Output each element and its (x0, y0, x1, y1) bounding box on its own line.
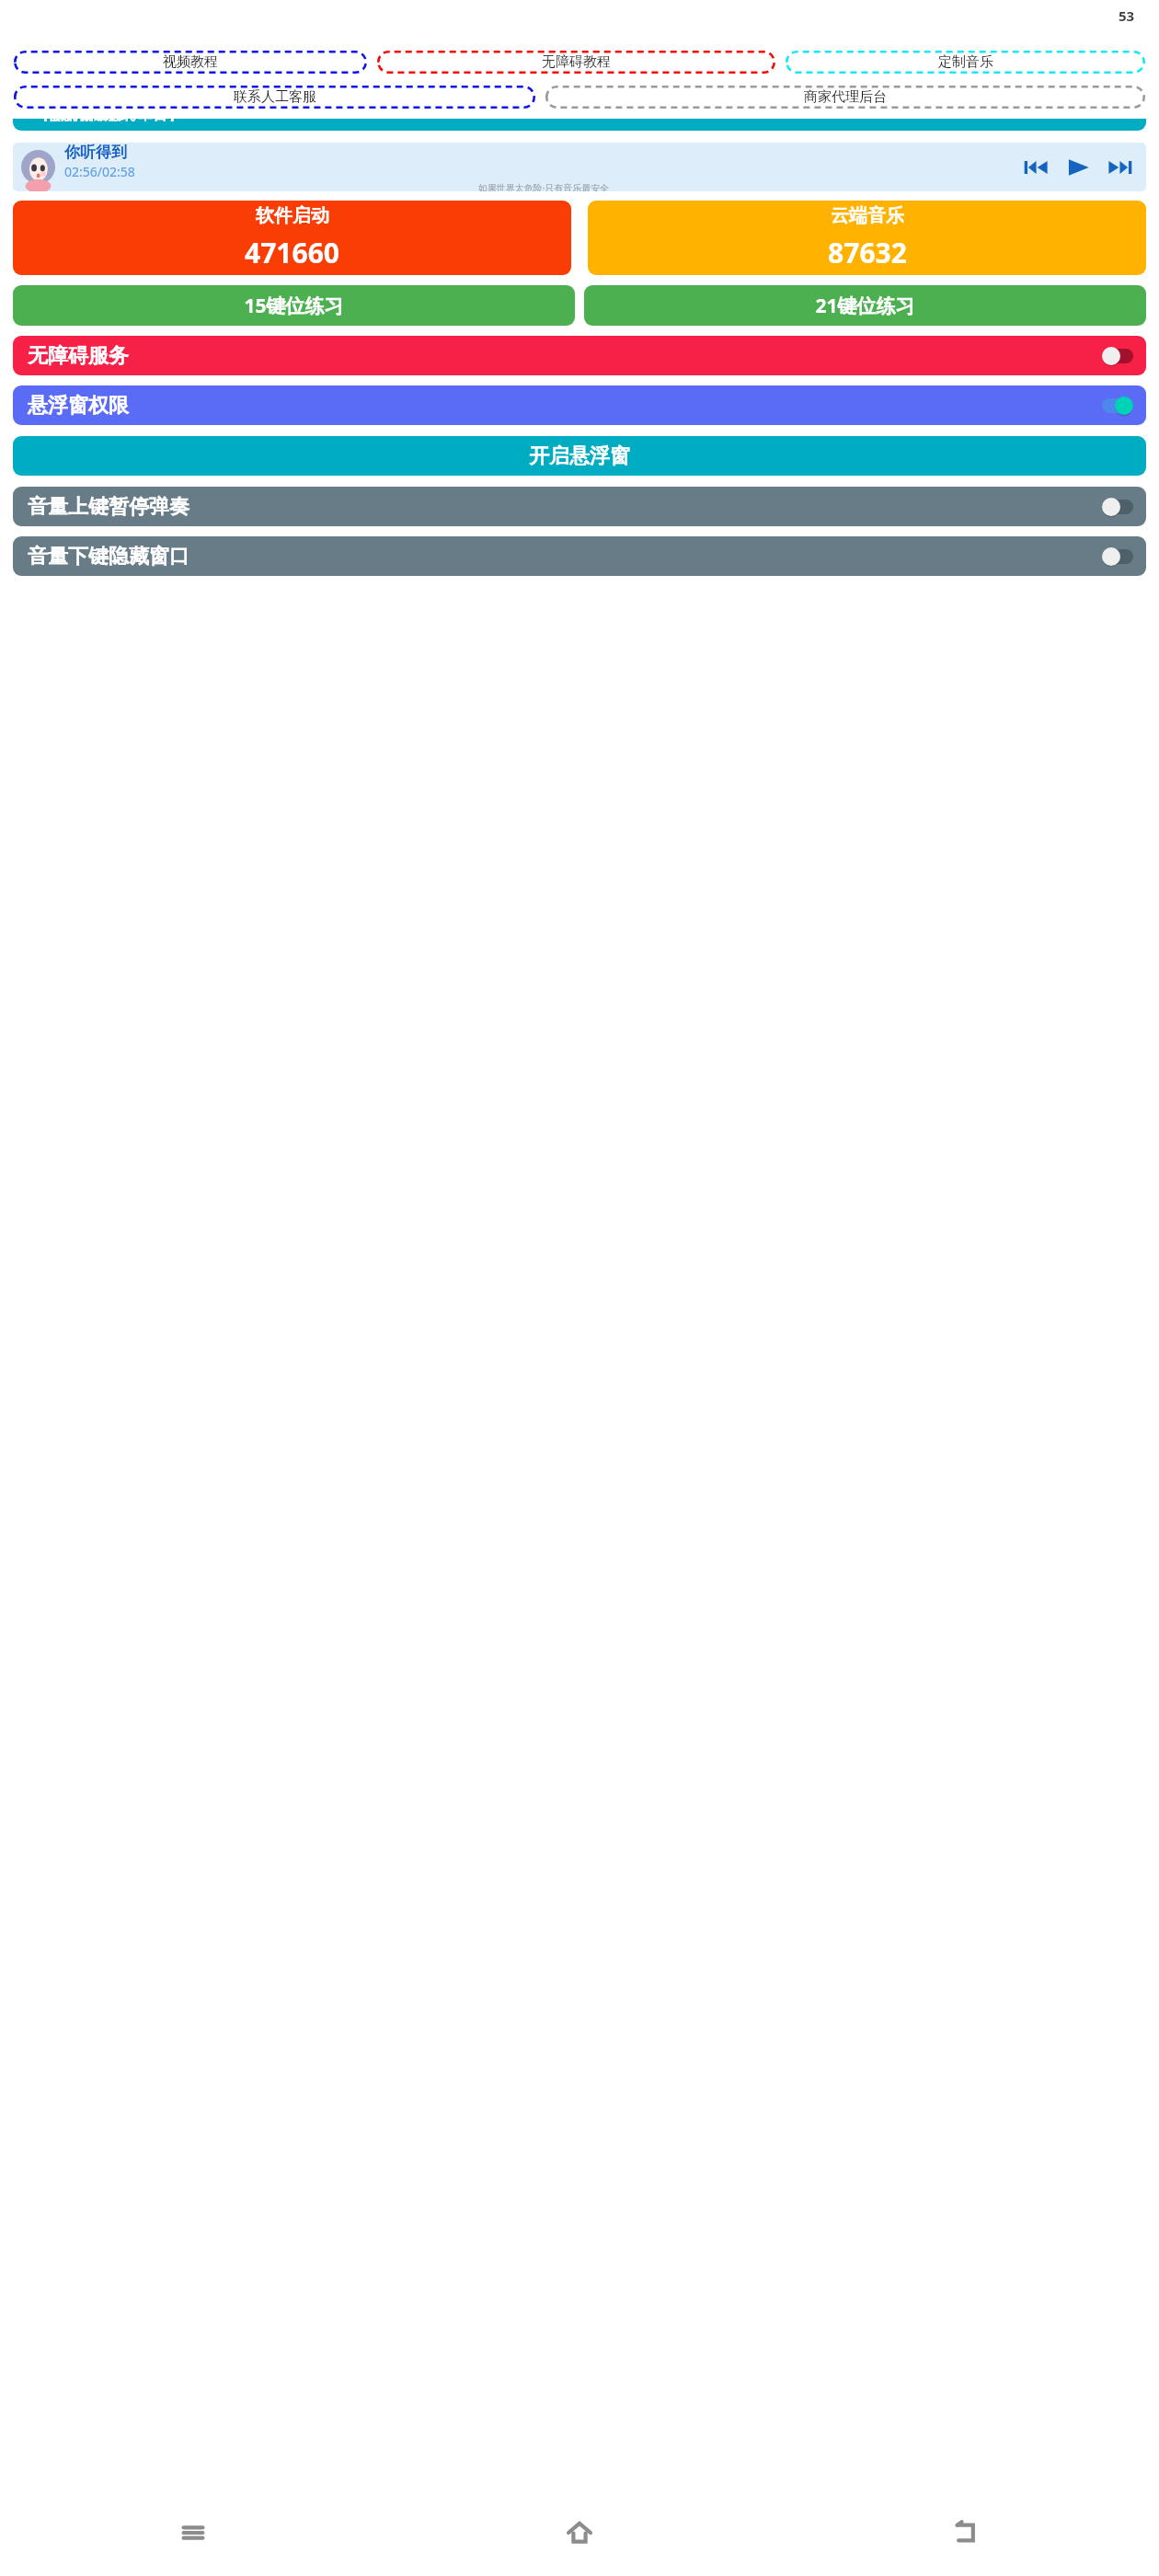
button[interactable]: 软件启动 (13, 201, 571, 275)
staticText: 联系人工客服 (234, 88, 316, 106)
button[interactable]: 你听得到 (13, 143, 1146, 191)
staticText: 软件启动 (256, 204, 329, 227)
button[interactable]: Back (773, 2489, 1159, 2576)
staticText: 云端音乐 (831, 204, 904, 227)
button[interactable]: 定制音乐 (786, 51, 1145, 74)
button[interactable]: Recents (0, 2489, 386, 2576)
button[interactable]: 【哆啦网络科技平台】 (13, 119, 1146, 131)
button[interactable]: 开启悬浮窗 (13, 436, 1146, 476)
staticText: 悬浮窗权限 (28, 393, 129, 419)
button[interactable]: 音量下键隐藏窗口 (13, 536, 1146, 576)
button[interactable]: 悬浮窗权限 (13, 385, 1146, 425)
staticText: 15键位练习 (244, 293, 344, 319)
staticText: 定制音乐 (938, 53, 993, 71)
button[interactable]: 联系人工客服 (14, 86, 535, 109)
button[interactable]: 无障碍服务 (13, 336, 1146, 375)
staticText: 视频教程 (163, 53, 218, 71)
button[interactable]: 15键位练习 (13, 285, 575, 326)
staticText: 【哆啦网络科技平台】 (35, 119, 182, 121)
staticText: 无障碍教程 (542, 53, 611, 71)
staticText: 音量上键暂停弹奏 (28, 494, 189, 520)
button[interactable]: 21键位练习 (584, 285, 1146, 326)
button[interactable]: Next (1107, 155, 1133, 180)
staticText: 音量下键隐藏窗口 (28, 544, 189, 569)
button[interactable]: 云端音乐 (588, 201, 1146, 275)
staticText: 02:56/02:58 (64, 163, 135, 180)
staticText: 21键位练习 (815, 293, 915, 319)
staticText: 53 (1119, 6, 1135, 25)
button[interactable]: 音量上键暂停弹奏 (13, 487, 1146, 526)
button[interactable]: 无障碍教程 (377, 51, 775, 74)
button[interactable]: Previous (1023, 155, 1049, 180)
button[interactable]: Home (386, 2489, 773, 2576)
staticText: 商家代理后台 (804, 88, 887, 106)
staticText: 87632 (828, 234, 907, 271)
staticText: 你听得到 (64, 143, 127, 162)
staticText: 471660 (245, 234, 339, 271)
button[interactable]: Play (1065, 155, 1091, 180)
button[interactable]: 视频教程 (14, 51, 367, 74)
staticText: 开启悬浮窗 (529, 443, 630, 469)
staticText: 无障碍服务 (28, 343, 129, 369)
staticText: 如果世界太危险·只有音乐最安全 (64, 181, 1023, 191)
button[interactable]: 商家代理后台 (545, 86, 1145, 109)
